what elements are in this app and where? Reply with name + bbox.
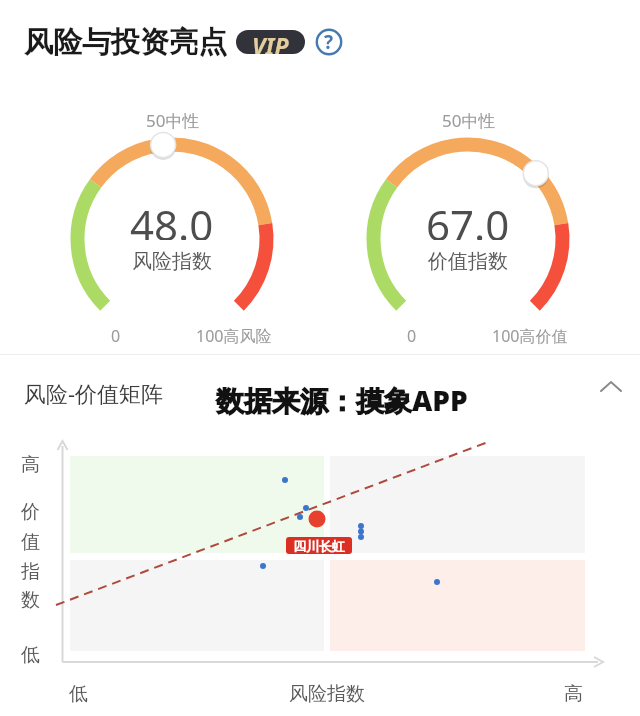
- button[interactable]: ?: [316, 29, 342, 55]
- staticText: 50中性: [442, 109, 496, 132]
- staticText: 0: [111, 325, 121, 347]
- button[interactable]: 四川长虹: [286, 537, 352, 554]
- button[interactable]: [598, 378, 624, 396]
- staticText: 低: [21, 643, 40, 667]
- staticText: 指: [21, 560, 40, 584]
- staticText: 50中性: [146, 109, 200, 132]
- staticText: 低: [69, 682, 88, 706]
- staticText: 高: [564, 682, 583, 706]
- button[interactable]: VIP: [236, 30, 305, 54]
- staticText: 风险-价值矩阵: [24, 378, 164, 408]
- staticText: 数据来源：摸象APP: [216, 381, 468, 419]
- staticText: 风险与投资亮点: [24, 24, 227, 61]
- staticText: 48.0: [130, 196, 214, 240]
- staticText: VIP: [252, 30, 289, 54]
- staticText: 四川长虹: [293, 538, 345, 554]
- staticText: 0: [407, 325, 417, 347]
- staticText: 67.0: [426, 196, 510, 240]
- staticText: 100高风险: [196, 325, 272, 347]
- button[interactable]: [0, 366, 640, 416]
- staticText: 数: [21, 588, 40, 612]
- staticText: 值: [21, 530, 40, 554]
- staticText: 100高价值: [492, 325, 568, 347]
- staticText: 价: [21, 500, 40, 524]
- staticText: 高: [21, 453, 40, 477]
- staticText: 价值指数: [428, 249, 508, 274]
- staticText: ?: [324, 29, 334, 55]
- staticText: 风险指数: [132, 249, 212, 274]
- staticText: 风险指数: [289, 682, 365, 706]
